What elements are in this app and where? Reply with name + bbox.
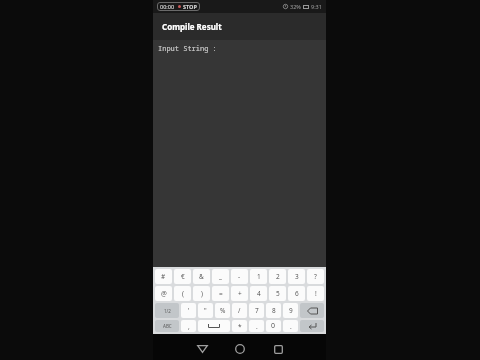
staticText: 7 bbox=[255, 306, 259, 315]
button[interactable] bbox=[189, 336, 215, 360]
button[interactable]: 4 bbox=[250, 286, 267, 301]
staticText: @ bbox=[161, 289, 167, 298]
button[interactable]: ! bbox=[307, 286, 324, 301]
staticText: ' bbox=[188, 306, 190, 315]
staticText: . bbox=[256, 322, 258, 331]
staticText: * bbox=[238, 322, 242, 331]
button[interactable]: ABC bbox=[155, 320, 179, 332]
staticText: = bbox=[219, 289, 223, 298]
button[interactable]: . bbox=[283, 320, 298, 332]
button[interactable]: € bbox=[174, 269, 191, 284]
button[interactable] bbox=[300, 303, 324, 318]
staticText: 32% bbox=[290, 3, 301, 10]
staticText: 0 bbox=[271, 321, 276, 331]
button[interactable]: 5 bbox=[269, 286, 286, 301]
staticText: 9 bbox=[289, 306, 293, 315]
button[interactable]: + bbox=[231, 286, 248, 301]
button[interactable]: 8 bbox=[266, 303, 281, 318]
button[interactable] bbox=[265, 336, 291, 360]
staticText: , bbox=[188, 322, 190, 331]
staticText: 00:00 bbox=[160, 3, 175, 10]
staticText: ? bbox=[314, 272, 317, 281]
button[interactable]: " bbox=[198, 303, 213, 318]
button[interactable]: 2 bbox=[269, 269, 286, 284]
staticText: & bbox=[199, 272, 204, 281]
button[interactable]: , bbox=[181, 320, 196, 332]
staticText: ! bbox=[315, 289, 317, 298]
staticText: _ bbox=[219, 272, 222, 281]
staticText: . bbox=[290, 322, 292, 331]
staticText: 2 bbox=[276, 272, 280, 281]
staticText: Compile Result bbox=[162, 21, 222, 32]
button[interactable] bbox=[300, 320, 324, 332]
button[interactable]: ? bbox=[307, 269, 324, 284]
staticText: Input String : bbox=[158, 44, 217, 54]
button[interactable]: @ bbox=[155, 286, 172, 301]
button[interactable]: ( bbox=[174, 286, 191, 301]
staticText: STOP bbox=[183, 3, 197, 10]
button[interactable]: _ bbox=[212, 269, 229, 284]
staticText: 1 bbox=[257, 272, 261, 281]
staticText: 1/2 bbox=[164, 308, 171, 314]
staticText: / bbox=[238, 306, 241, 315]
button[interactable]: = bbox=[212, 286, 229, 301]
staticText: + bbox=[238, 289, 242, 298]
button[interactable] bbox=[198, 320, 230, 332]
button[interactable] bbox=[227, 336, 253, 360]
staticText: 6 bbox=[295, 289, 299, 298]
staticText: 8 bbox=[272, 306, 276, 315]
button[interactable]: 6 bbox=[288, 286, 305, 301]
staticText: ) bbox=[201, 289, 203, 298]
button[interactable]: 9 bbox=[283, 303, 298, 318]
staticText: % bbox=[220, 306, 226, 315]
button[interactable]: & bbox=[193, 269, 210, 284]
button[interactable]: ' bbox=[181, 303, 196, 318]
staticText: " bbox=[204, 306, 207, 315]
staticText: - bbox=[238, 272, 241, 281]
staticText: € bbox=[181, 272, 185, 281]
staticText: # bbox=[161, 272, 166, 281]
button[interactable]: # bbox=[155, 269, 172, 284]
staticText: 4 bbox=[257, 289, 261, 298]
button[interactable]: 7 bbox=[249, 303, 264, 318]
button[interactable]: 1/2 bbox=[155, 303, 179, 318]
button[interactable]: 0 bbox=[266, 320, 281, 332]
staticText: 3 bbox=[295, 272, 299, 281]
button[interactable]: % bbox=[215, 303, 230, 318]
staticText: 5 bbox=[276, 289, 280, 298]
button[interactable]: / bbox=[232, 303, 247, 318]
button[interactable]: 1 bbox=[250, 269, 267, 284]
staticText: ABC bbox=[163, 323, 172, 329]
staticText: 9:31 bbox=[311, 3, 322, 10]
button[interactable]: . bbox=[249, 320, 264, 332]
button[interactable]: 3 bbox=[288, 269, 305, 284]
button[interactable]: ) bbox=[193, 286, 210, 301]
button[interactable]: * bbox=[232, 320, 247, 332]
button[interactable]: - bbox=[231, 269, 248, 284]
staticText: ( bbox=[182, 289, 184, 298]
